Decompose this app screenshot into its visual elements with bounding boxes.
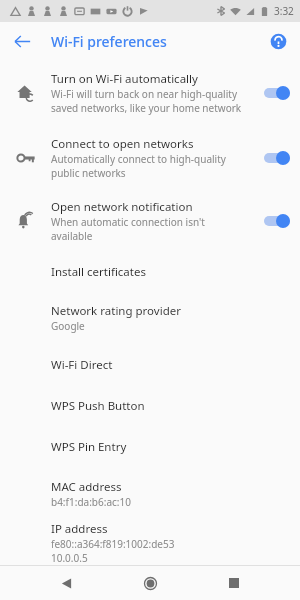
staticText: Turn on Wi-Fi automatically (51, 71, 198, 87)
staticText: Network rating provider (51, 303, 181, 319)
button[interactable]: Install certificates (0, 252, 300, 292)
staticText: WPS Push Button (51, 398, 145, 414)
button[interactable]: WPS Pin Entry (0, 426, 300, 468)
button[interactable]: Wi-Fi Direct (0, 344, 300, 386)
button[interactable]: Back (52, 569, 80, 597)
staticText: MAC address (51, 479, 122, 495)
staticText: saved networks, like your home network (51, 101, 242, 115)
button[interactable]: Back (4, 23, 40, 59)
staticText: When automatic connection isn't (51, 215, 205, 229)
staticText: Wi-Fi will turn back on near high-qualit… (51, 87, 237, 101)
button[interactable]: Network rating provider (0, 292, 300, 344)
staticText: Wi-Fi preferences (51, 32, 167, 51)
button[interactable]: Open network notification (0, 190, 300, 252)
button[interactable]: Help (262, 25, 294, 57)
staticText: 3:32 (274, 4, 294, 18)
staticText: b4:f1:da:b6:ac:10 (51, 495, 131, 509)
staticText: fe80::a364:f819:1002:de53 (51, 537, 175, 551)
staticText: Automatically connect to high-quality (51, 152, 226, 166)
staticText: available (51, 229, 93, 243)
staticText: Connect to open networks (51, 136, 194, 152)
staticText: WPS Pin Entry (51, 439, 127, 455)
staticText: Open network notification (51, 199, 193, 215)
staticText: Wi-Fi Direct (51, 357, 113, 373)
button[interactable]: Recents (220, 569, 248, 597)
staticText: Install certificates (51, 264, 146, 280)
staticText: 10.0.0.5 (51, 551, 88, 565)
staticText: Google (51, 319, 85, 333)
button[interactable]: Home (136, 569, 164, 597)
button[interactable]: MAC address (0, 468, 300, 520)
button[interactable]: WPS Push Button (0, 386, 300, 426)
button[interactable]: Connect to open networks (0, 125, 300, 190)
staticText: IP address (51, 521, 108, 537)
staticText: public networks (51, 166, 126, 180)
button[interactable]: Turn on Wi-Fi automatically (0, 60, 300, 125)
button[interactable]: IP address (0, 520, 300, 565)
